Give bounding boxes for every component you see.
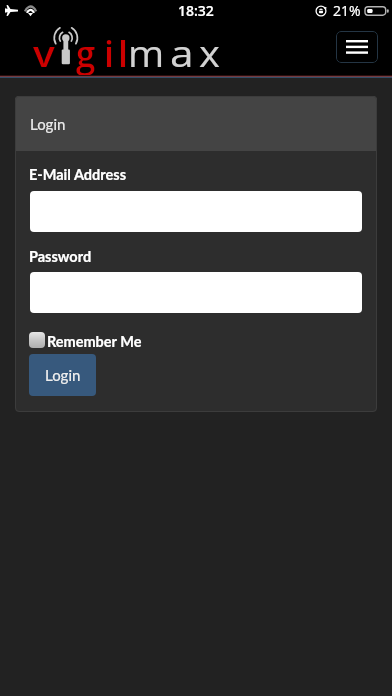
other: Wi-Fi [24,6,37,16]
button[interactable]: Remember Me [29,331,159,349]
staticText: a [170,29,195,78]
staticText: i [104,29,115,78]
staticText: g [76,29,96,78]
button[interactable]: Password input [30,272,362,313]
staticText: Login [45,366,81,384]
staticText: Remember Me [47,333,142,350]
other: Battery 21 percent [365,5,388,17]
staticText: l [118,29,129,78]
staticText: E-Mail Address [29,166,127,183]
other: Airplane mode [5,5,18,16]
staticText: m [128,29,165,78]
staticText: Password [29,248,92,265]
button[interactable]: Menu [336,31,378,63]
staticText: x [199,29,220,78]
other: Rotation lock [315,5,327,17]
button[interactable]: Login [29,354,96,396]
button[interactable]: E-Mail Address input [30,191,362,232]
staticText: 21% [333,1,361,20]
staticText: 18:32 [178,1,214,20]
staticText: Login [30,115,66,133]
staticText: v [33,29,56,78]
